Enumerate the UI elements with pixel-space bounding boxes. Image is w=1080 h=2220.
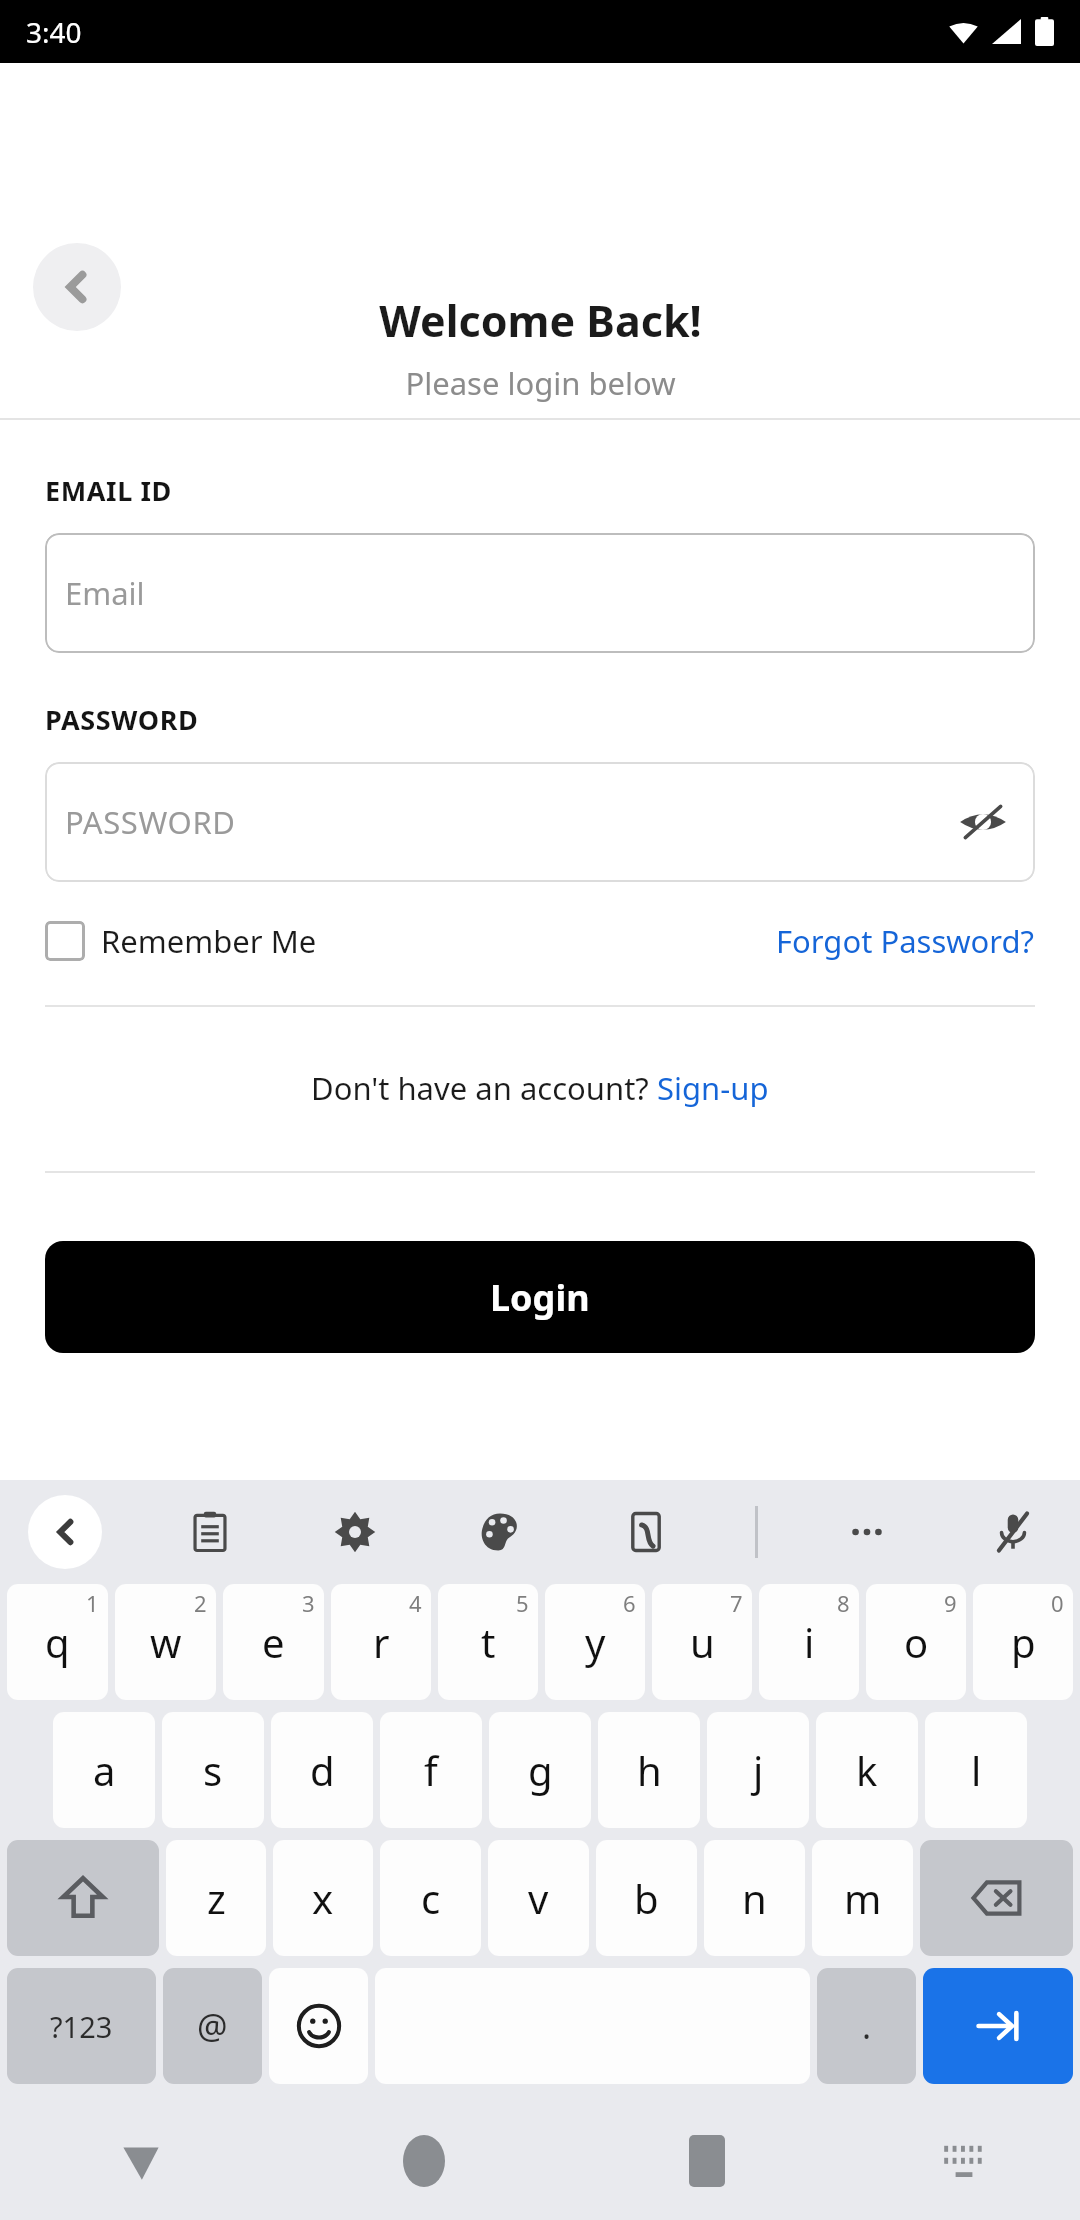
button[interactable]: w <box>115 1584 216 1700</box>
button[interactable]: Home <box>282 2102 565 2220</box>
staticText: e <box>262 1615 285 1669</box>
button[interactable]: More <box>830 1495 904 1569</box>
button[interactable]: Clipboard <box>173 1495 247 1569</box>
button[interactable]: Enter <box>923 1968 1073 2084</box>
staticText: Forgot Password? <box>776 920 1035 962</box>
button[interactable]: p <box>973 1584 1073 1700</box>
button[interactable]: h <box>598 1712 700 1828</box>
staticText: g <box>528 1743 553 1797</box>
staticText: EMAIL ID <box>45 472 172 509</box>
button[interactable]: Shift <box>7 1840 159 1956</box>
button[interactable]: d <box>271 1712 373 1828</box>
staticText: Please login below <box>405 362 676 404</box>
staticText: 1 <box>86 1588 99 1618</box>
staticText: Login <box>490 1273 590 1322</box>
button[interactable]: l <box>925 1712 1027 1828</box>
staticText: @ <box>197 2003 228 2049</box>
staticText: c <box>421 1871 441 1925</box>
staticText: 7 <box>730 1588 743 1618</box>
staticText: k <box>856 1743 878 1797</box>
button[interactable]: Forgot Password? <box>776 920 1035 962</box>
button[interactable]: . <box>817 1968 916 2084</box>
button[interactable]: Switch keyboard <box>848 2102 1080 2220</box>
button[interactable]: g <box>489 1712 591 1828</box>
staticText: Sign-up <box>657 1067 769 1109</box>
button[interactable]: Back <box>33 243 121 331</box>
staticText: 8 <box>837 1588 850 1618</box>
staticText: z <box>207 1871 226 1925</box>
button[interactable]: r <box>331 1584 431 1700</box>
staticText: w <box>150 1615 182 1669</box>
staticText: t <box>481 1615 496 1669</box>
staticText: b <box>634 1871 659 1925</box>
button[interactable]: k <box>816 1712 918 1828</box>
staticText: s <box>203 1743 223 1797</box>
button[interactable]: j <box>707 1712 809 1828</box>
button[interactable]: c <box>380 1840 481 1956</box>
button[interactable]: s <box>162 1712 264 1828</box>
button[interactable]: e <box>223 1584 324 1700</box>
staticText: Don't have an account? <box>311 1067 657 1109</box>
staticText: . <box>862 2003 872 2049</box>
button[interactable]: Recents <box>565 2102 848 2220</box>
staticText: 4 <box>409 1588 422 1618</box>
staticText: m <box>844 1871 882 1925</box>
button[interactable]: q <box>7 1584 108 1700</box>
button[interactable]: Email <box>45 533 1035 653</box>
staticText: Email <box>65 572 145 614</box>
staticText: h <box>637 1743 662 1797</box>
staticText: 2 <box>194 1588 207 1618</box>
button[interactable]: ?123 <box>7 1968 156 2084</box>
button[interactable]: @ <box>163 1968 262 2084</box>
staticText: Remember Me <box>101 920 317 962</box>
button[interactable]: a <box>53 1712 155 1828</box>
staticText: r <box>373 1615 390 1669</box>
staticText: n <box>742 1871 767 1925</box>
staticText: p <box>1011 1615 1036 1669</box>
staticText: PASSWORD <box>45 701 199 738</box>
button[interactable]: Show password <box>951 790 1015 854</box>
button[interactable]: y <box>545 1584 645 1700</box>
button[interactable]: m <box>812 1840 913 1956</box>
staticText: l <box>971 1743 982 1797</box>
staticText: v <box>528 1871 549 1925</box>
button[interactable]: v <box>488 1840 589 1956</box>
button[interactable]: u <box>652 1584 752 1700</box>
staticText: ?123 <box>50 2007 113 2046</box>
button[interactable]: Emoji <box>269 1968 368 2084</box>
button[interactable]: Settings <box>318 1495 392 1569</box>
button[interactable]: Sign-up <box>657 1067 769 1109</box>
button[interactable]: Handwriting <box>609 1495 683 1569</box>
button[interactable]: z <box>166 1840 266 1956</box>
button[interactable]: Close toolbar <box>28 1495 102 1569</box>
button[interactable]: PASSWORD <box>45 762 1035 882</box>
staticText: i <box>804 1615 815 1669</box>
staticText: a <box>93 1743 116 1797</box>
button[interactable]: Login <box>45 1241 1035 1353</box>
staticText: x <box>312 1871 334 1925</box>
staticText: PASSWORD <box>65 801 236 843</box>
button[interactable]: Theme <box>463 1495 537 1569</box>
staticText: 3 <box>302 1588 315 1618</box>
staticText: d <box>310 1743 335 1797</box>
button[interactable]: f <box>380 1712 482 1828</box>
staticText: 0 <box>1051 1588 1064 1618</box>
staticText: y <box>585 1615 606 1669</box>
button[interactable]: Back <box>0 2102 282 2220</box>
staticText: 5 <box>516 1588 529 1618</box>
button[interactable]: Voice off <box>976 1495 1050 1569</box>
staticText: 6 <box>623 1588 636 1618</box>
button[interactable]: Remember Me <box>45 920 317 962</box>
button[interactable]: Backspace <box>920 1840 1073 1956</box>
staticText: f <box>424 1743 438 1797</box>
button[interactable]: o <box>866 1584 966 1700</box>
staticText: o <box>904 1615 929 1669</box>
button[interactable]: n <box>704 1840 805 1956</box>
button[interactable]: i <box>759 1584 859 1700</box>
button[interactable]: x <box>273 1840 373 1956</box>
button[interactable]: t <box>438 1584 538 1700</box>
button[interactable]: b <box>596 1840 697 1956</box>
staticText: j <box>753 1743 764 1797</box>
staticText: 3:40 <box>26 13 82 51</box>
